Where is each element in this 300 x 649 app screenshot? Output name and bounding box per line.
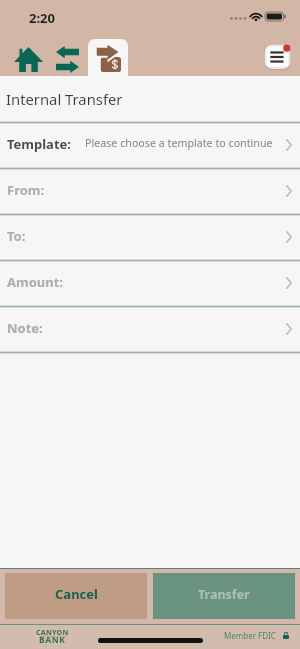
staticText: From: [7,181,45,199]
staticText: Internal Transfer [6,89,123,109]
staticText: Please choose a template to continue [85,136,273,151]
staticText: Cancel [55,585,98,603]
button[interactable]: Cancel [5,573,147,619]
button[interactable]: Transfer [153,573,295,619]
staticText: Amount: [7,273,63,291]
staticText: BANK [39,634,66,646]
button[interactable]: To: [0,215,300,260]
button[interactable]: Amount: [0,261,300,306]
staticText: Note: [7,319,43,337]
button[interactable]: Payments [96,45,121,72]
staticText: Transfer [198,586,250,603]
button[interactable]: Home [14,47,43,72]
button[interactable]: Menu [264,44,291,70]
staticText: 2:20 [29,9,55,27]
button[interactable]: Transfers [56,46,79,73]
button[interactable]: Note: [0,307,300,352]
button[interactable]: From: [0,169,300,214]
staticText: CANYON [36,627,69,637]
staticText: To: [7,227,26,245]
button[interactable]: Template: [0,123,300,168]
staticText: Member FDIC [224,630,276,641]
staticText: Template: [7,135,71,153]
